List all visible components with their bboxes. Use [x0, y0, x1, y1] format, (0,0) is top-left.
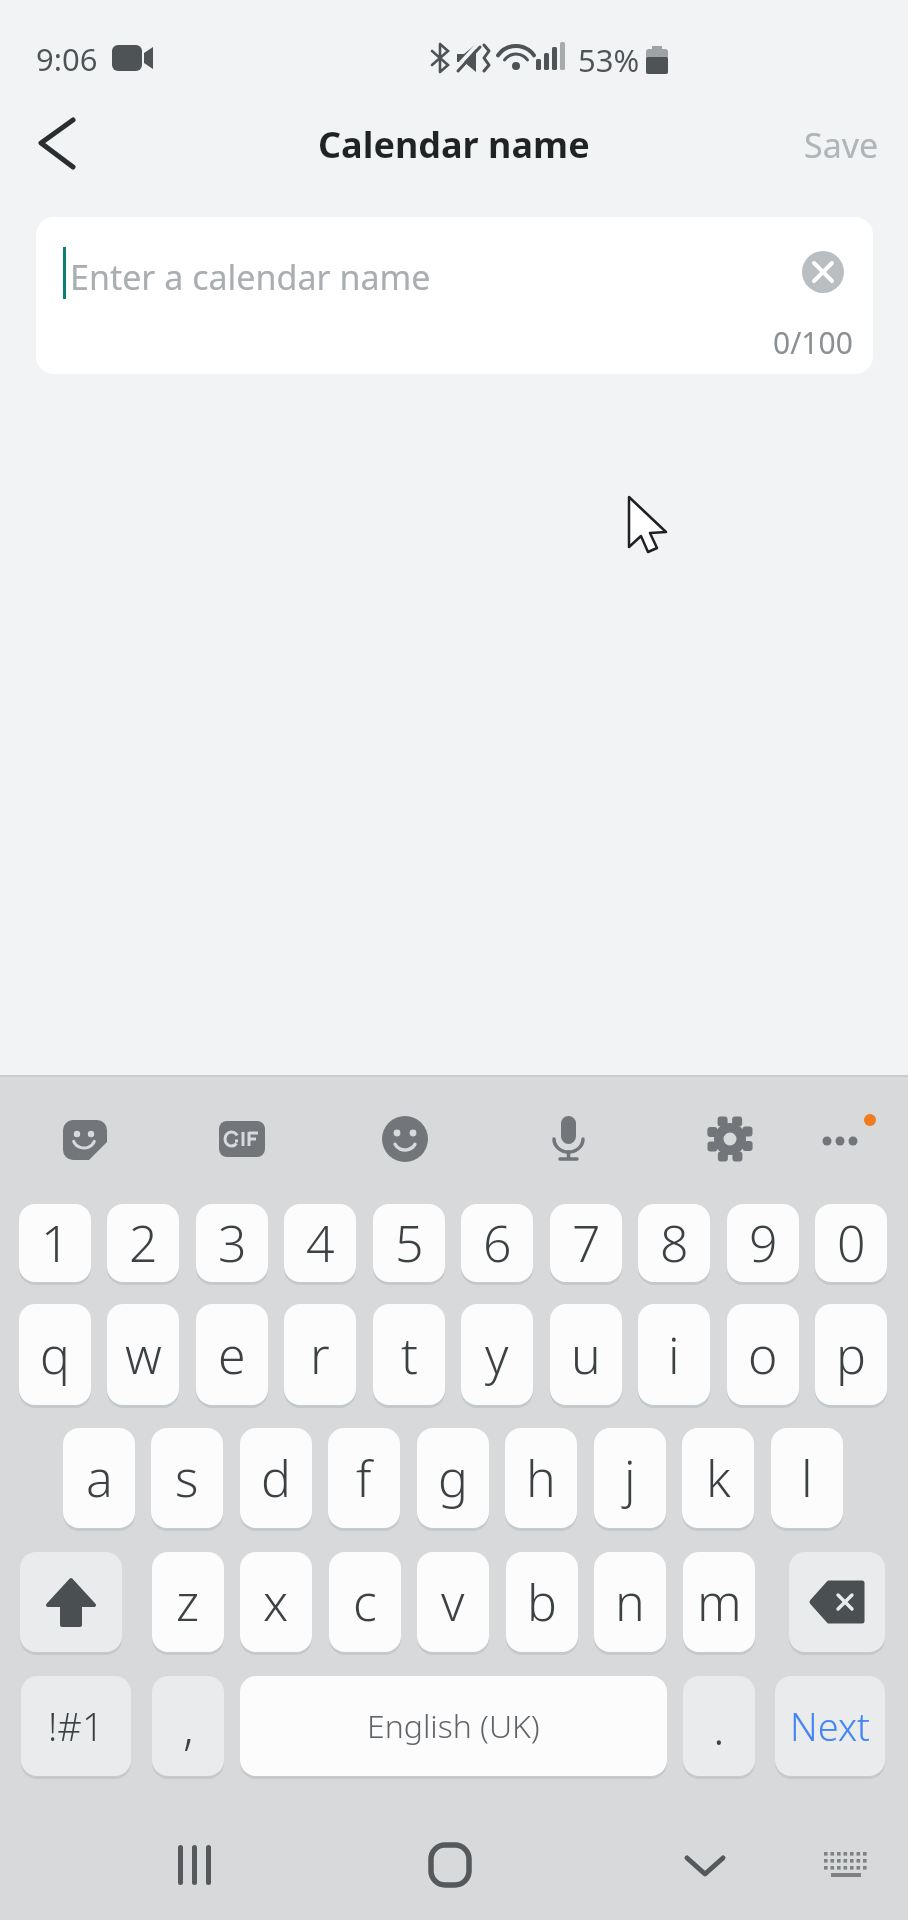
button[interactable]: 7	[550, 1204, 622, 1282]
staticText: d	[261, 1444, 291, 1512]
button[interactable]: Next	[775, 1676, 885, 1776]
button[interactable]	[815, 1108, 875, 1168]
button[interactable]: English (UK)	[240, 1676, 667, 1776]
staticText: 2	[129, 1209, 158, 1277]
staticText: 5	[395, 1209, 424, 1277]
button[interactable]: a	[63, 1428, 135, 1528]
button[interactable]: n	[594, 1552, 666, 1652]
button[interactable]: 9	[727, 1204, 799, 1282]
staticText: 4	[306, 1209, 335, 1277]
button[interactable]: p	[815, 1304, 887, 1405]
button[interactable]	[802, 251, 844, 293]
staticText: a	[86, 1444, 113, 1512]
button[interactable]: g	[417, 1428, 489, 1528]
staticText: !#1	[48, 1700, 104, 1752]
staticText: l	[801, 1444, 813, 1512]
button[interactable]: l	[771, 1428, 843, 1528]
staticText: 9	[749, 1209, 778, 1277]
staticText: v	[441, 1568, 465, 1636]
staticText: .	[713, 1694, 725, 1759]
button[interactable]: r	[284, 1304, 356, 1405]
button[interactable]	[165, 1835, 225, 1895]
staticText: Save	[804, 122, 879, 166]
button[interactable]: m	[683, 1552, 755, 1652]
button[interactable]: 0	[815, 1204, 887, 1282]
staticText: 8	[660, 1209, 689, 1277]
staticText: h	[526, 1444, 556, 1512]
button[interactable]: k	[682, 1428, 754, 1528]
button[interactable]: i	[638, 1304, 710, 1405]
staticText: o	[748, 1321, 778, 1389]
button[interactable]: y	[461, 1304, 533, 1405]
button[interactable]: 3	[196, 1204, 268, 1282]
button[interactable]: v	[417, 1552, 489, 1652]
staticText: 7	[572, 1209, 601, 1277]
button[interactable]	[55, 1108, 115, 1168]
button[interactable]: 2	[107, 1204, 179, 1282]
staticText: x	[263, 1568, 289, 1636]
button[interactable]	[212, 1108, 272, 1168]
button[interactable]: w	[107, 1304, 179, 1405]
staticText: Calendar name	[318, 120, 590, 169]
button[interactable]: e	[196, 1304, 268, 1405]
button[interactable]: z	[152, 1552, 224, 1652]
button[interactable]: Enter a calendar name	[36, 217, 873, 374]
staticText: 9:06	[36, 38, 98, 80]
button[interactable]: Save	[796, 122, 886, 166]
staticText: 6	[483, 1209, 512, 1277]
staticText: z	[176, 1568, 200, 1636]
staticText: f	[356, 1444, 372, 1512]
button[interactable]	[816, 1844, 874, 1896]
staticText: ,	[183, 1694, 194, 1759]
button[interactable]: ,	[152, 1676, 224, 1776]
button[interactable]	[420, 1835, 480, 1895]
staticText: 0/100	[773, 322, 853, 363]
button[interactable]: f	[328, 1428, 400, 1528]
button[interactable]	[375, 1108, 435, 1168]
button[interactable]: b	[506, 1552, 578, 1652]
staticText: g	[438, 1444, 468, 1512]
staticText: u	[571, 1321, 601, 1389]
button[interactable]: h	[505, 1428, 577, 1528]
staticText: 3	[218, 1209, 247, 1277]
staticText: i	[668, 1321, 680, 1389]
button[interactable]: t	[373, 1304, 445, 1405]
button[interactable]: 6	[461, 1204, 533, 1282]
staticText: j	[624, 1444, 636, 1512]
staticText: y	[485, 1321, 509, 1389]
staticText: s	[175, 1444, 199, 1512]
button[interactable]: o	[727, 1304, 799, 1405]
button[interactable]: 5	[373, 1204, 445, 1282]
staticText: Next	[790, 1700, 870, 1752]
button[interactable]	[675, 1835, 735, 1895]
button[interactable]: 8	[638, 1204, 710, 1282]
staticText: w	[125, 1321, 162, 1389]
button[interactable]: q	[19, 1304, 91, 1405]
button[interactable]: .	[683, 1676, 755, 1776]
staticText: Enter a calendar name	[70, 254, 431, 300]
button[interactable]	[789, 1552, 885, 1652]
staticText: m	[697, 1568, 742, 1636]
button[interactable]: 1	[19, 1204, 91, 1282]
button[interactable]: x	[240, 1552, 312, 1652]
button[interactable]	[20, 1552, 122, 1652]
staticText: English (UK)	[367, 1704, 540, 1748]
staticText: r	[310, 1321, 330, 1389]
button[interactable]	[700, 1108, 760, 1168]
staticText: n	[615, 1568, 645, 1636]
staticText: 1	[41, 1209, 70, 1277]
button[interactable]: u	[550, 1304, 622, 1405]
button[interactable]	[538, 1108, 598, 1168]
staticText: e	[218, 1321, 246, 1389]
staticText: q	[40, 1321, 70, 1389]
staticText: c	[353, 1568, 377, 1636]
button[interactable]: 4	[284, 1204, 356, 1282]
button[interactable]: d	[240, 1428, 312, 1528]
button[interactable]	[24, 114, 84, 174]
button[interactable]: j	[594, 1428, 666, 1528]
staticText: k	[706, 1444, 731, 1512]
staticText: 0	[837, 1209, 866, 1277]
button[interactable]: !#1	[21, 1676, 131, 1776]
button[interactable]: s	[151, 1428, 223, 1528]
button[interactable]: c	[329, 1552, 401, 1652]
